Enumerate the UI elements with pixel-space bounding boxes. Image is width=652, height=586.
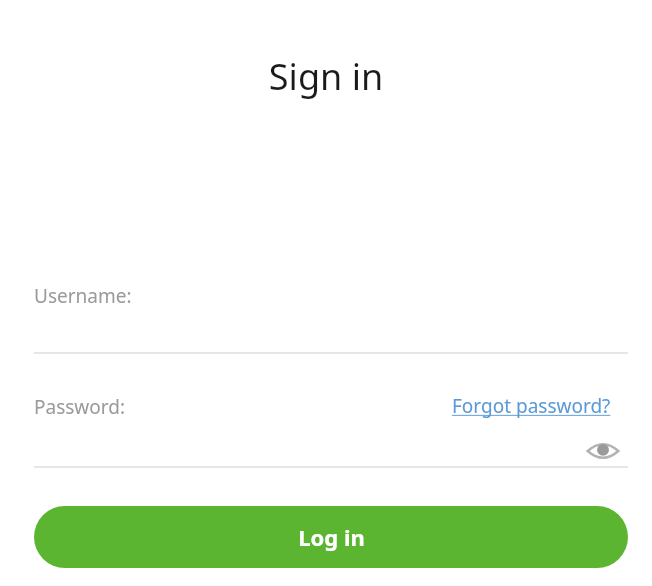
button[interactable]: Show password — [582, 436, 624, 466]
staticText: Sign in — [0, 52, 652, 101]
button[interactable]: Password input field — [34, 426, 628, 468]
staticText: Forgot password? — [452, 393, 611, 419]
button[interactable]: Log in — [34, 506, 628, 568]
button[interactable]: Username input field — [34, 312, 628, 354]
staticText: Password: — [34, 394, 126, 420]
staticText: Username: — [34, 283, 132, 309]
staticText: Log in — [298, 522, 365, 552]
button[interactable]: Forgot password? — [450, 392, 613, 420]
